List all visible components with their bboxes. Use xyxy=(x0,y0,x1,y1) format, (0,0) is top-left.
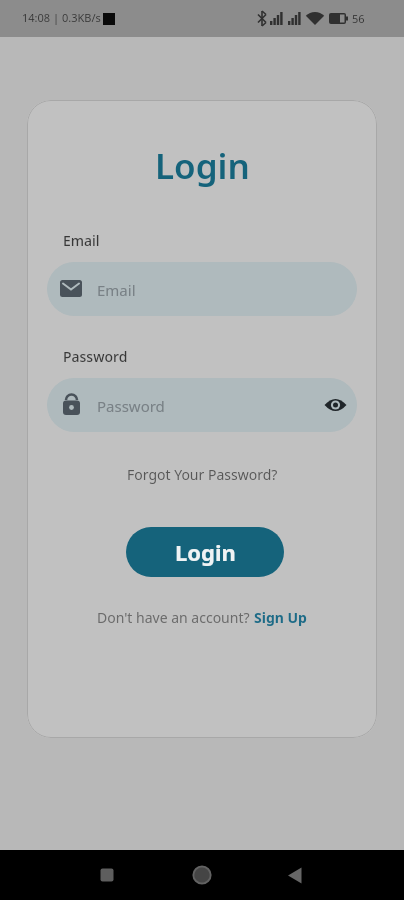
staticText: Login xyxy=(175,537,236,567)
button[interactable] xyxy=(190,863,214,887)
staticText: Password xyxy=(63,347,128,366)
button[interactable]: Password xyxy=(47,378,357,432)
button[interactable] xyxy=(95,863,119,887)
button[interactable] xyxy=(283,863,307,887)
staticText: 56 xyxy=(352,11,365,26)
button[interactable]: Forgot Your Password? xyxy=(127,465,278,484)
staticText: Don't have an account? xyxy=(97,608,254,627)
button[interactable]: Email xyxy=(47,262,357,316)
staticText: Password xyxy=(97,396,165,416)
staticText: Email xyxy=(97,280,136,300)
staticText: Email xyxy=(63,231,100,250)
staticText: 14:08 | 0.3KB/s xyxy=(22,10,101,25)
staticText: Login xyxy=(155,142,250,190)
button[interactable]: Login xyxy=(126,527,284,577)
button[interactable]: Sign Up xyxy=(254,608,307,627)
button[interactable] xyxy=(324,394,347,416)
